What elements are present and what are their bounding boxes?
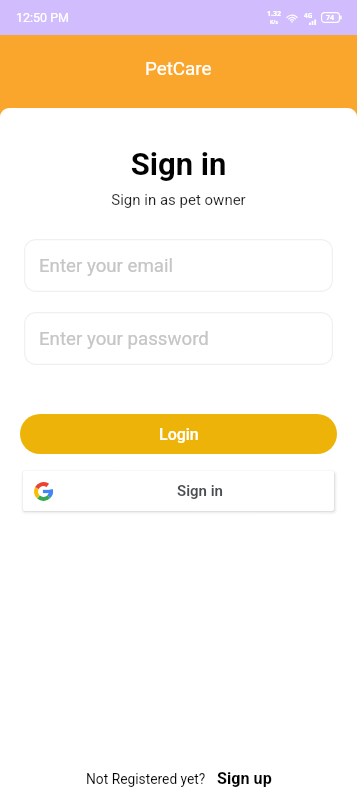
staticText: Enter your password (39, 328, 209, 350)
button[interactable]: Sign up (217, 769, 272, 788)
staticText: K/s (270, 19, 278, 26)
button[interactable]: Enter your password (24, 312, 333, 365)
button[interactable]: Enter your email (24, 239, 333, 292)
button[interactable]: Sign in (23, 471, 334, 511)
staticText: 1.32 (267, 9, 281, 19)
staticText: Enter your email (39, 255, 174, 277)
button[interactable]: Login (20, 414, 337, 454)
staticText: Sign in (0, 146, 357, 182)
staticText: 74 (326, 13, 335, 23)
staticText: 4G (304, 11, 313, 20)
staticText: PetCare (145, 58, 212, 80)
staticText: Sign in (177, 482, 223, 500)
staticText: 12:50 PM (16, 10, 70, 25)
staticText: Sign in as pet owner (0, 191, 357, 209)
staticText: Not Registered yet? (86, 771, 206, 787)
staticText: Sign up (217, 769, 272, 788)
staticText: Login (159, 425, 199, 444)
